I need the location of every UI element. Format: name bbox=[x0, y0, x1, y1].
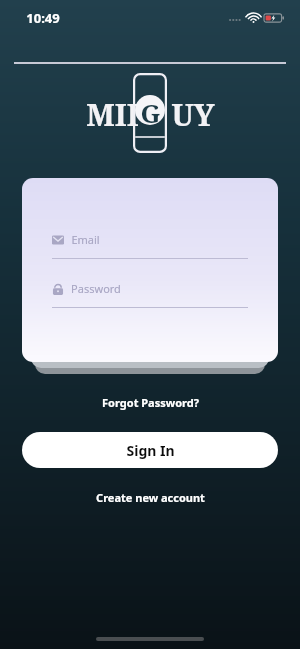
button[interactable]: Sign In bbox=[22, 432, 278, 468]
staticText: 10:49 bbox=[26, 9, 60, 27]
button[interactable]: Email bbox=[52, 232, 248, 259]
button[interactable]: Forgot Password? bbox=[94, 392, 207, 413]
staticText: Password bbox=[71, 281, 121, 296]
staticText: UY bbox=[171, 94, 215, 135]
staticText: Create new account bbox=[96, 490, 205, 505]
button[interactable]: Create new account bbox=[88, 487, 213, 508]
staticText: G bbox=[140, 95, 161, 125]
staticText: Email bbox=[71, 232, 100, 247]
button[interactable]: Password bbox=[52, 281, 248, 308]
staticText: Sign In bbox=[126, 441, 175, 460]
staticText: MII bbox=[86, 94, 139, 135]
staticText: Forgot Password? bbox=[102, 395, 199, 410]
